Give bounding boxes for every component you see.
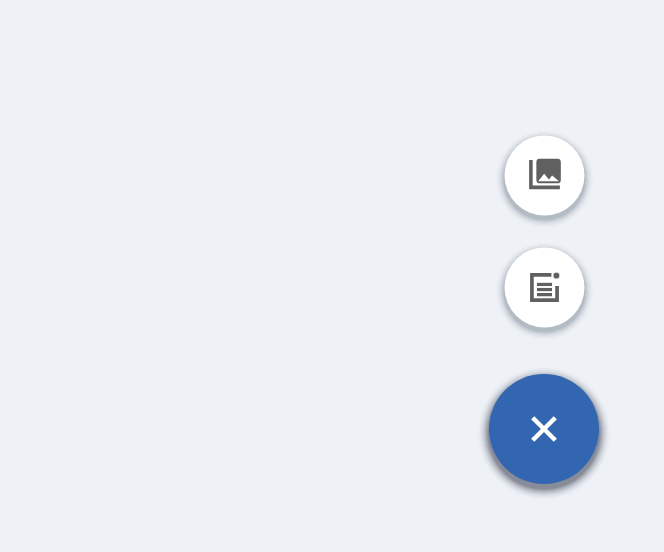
button[interactable]: Create new post <box>490 233 599 342</box>
button[interactable]: Close menu <box>470 355 618 503</box>
button[interactable]: Add photo from library <box>490 121 599 230</box>
